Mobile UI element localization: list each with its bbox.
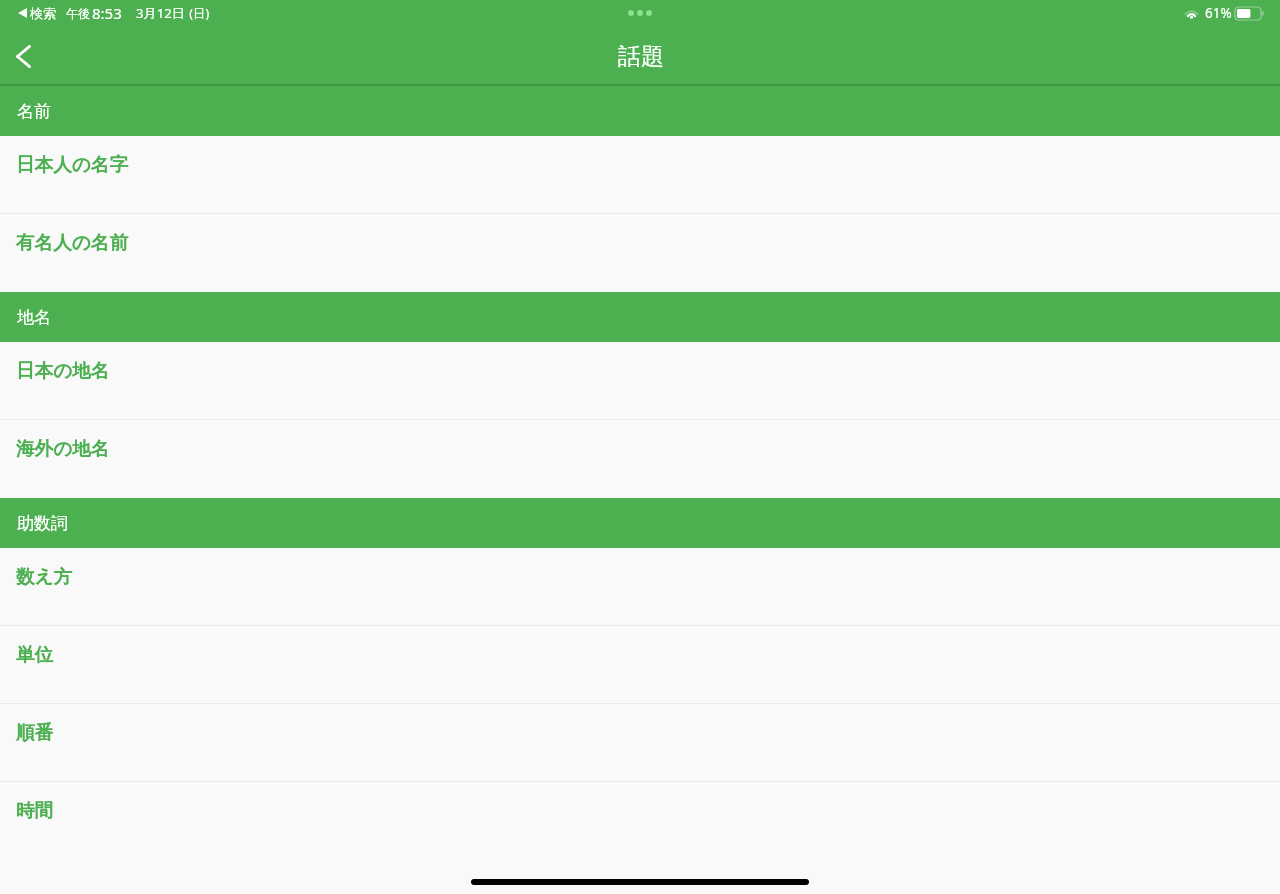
button[interactable]: 海外の地名	[0, 420, 1280, 498]
staticText: 日本人の名字	[16, 153, 128, 176]
staticText: 順番	[16, 721, 54, 744]
staticText: 話題	[618, 42, 664, 71]
staticText: 午後	[66, 6, 90, 21]
button[interactable]: 時間	[0, 782, 1280, 860]
staticText: 海外の地名	[16, 437, 110, 460]
button[interactable]: 有名人の名前	[0, 214, 1280, 292]
button[interactable]: 順番	[0, 704, 1280, 782]
button[interactable]: 数え方	[0, 548, 1280, 626]
staticText: 助数詞	[17, 513, 68, 534]
staticText: 日本の地名	[16, 359, 110, 382]
staticText: 単位	[16, 643, 54, 666]
staticText: 地名	[17, 307, 51, 328]
staticText: 61%	[1205, 4, 1232, 22]
staticText: 検索	[30, 5, 56, 21]
staticText: 有名人の名前	[16, 231, 128, 254]
button[interactable]: 日本の地名	[0, 342, 1280, 420]
staticText: 時間	[16, 799, 54, 822]
staticText: 3月12日	[136, 4, 186, 22]
button[interactable]: 戻る	[0, 28, 56, 84]
button[interactable]: 単位	[0, 626, 1280, 704]
staticText: 8:53	[92, 3, 122, 23]
staticText: 数え方	[16, 565, 73, 588]
staticText: (日)	[186, 5, 210, 22]
button[interactable]: 日本人の名字	[0, 136, 1280, 214]
staticText: 名前	[17, 101, 51, 122]
